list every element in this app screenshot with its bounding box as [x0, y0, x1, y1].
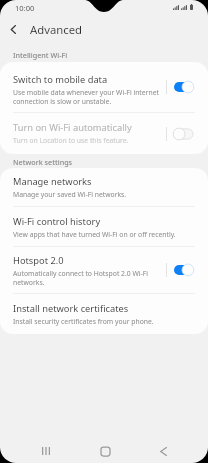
staticText: Intelligent Wi-Fi	[13, 50, 68, 60]
staticText: Turn on Location to use this feature.	[13, 136, 129, 145]
button[interactable]: Navigate up	[0, 18, 27, 40]
button[interactable]: Install network certificates	[0, 294, 208, 334]
button[interactable]: Hotspot 2.0	[0, 247, 208, 293]
staticText: Manage networks	[13, 175, 92, 188]
button[interactable]: Back	[148, 436, 178, 463]
staticText: Use mobile data whenever your Wi-Fi inte…	[13, 88, 161, 106]
staticText: View apps that have turned Wi-Fi on or o…	[13, 230, 176, 239]
staticText: Manage your saved Wi-Fi networks.	[13, 190, 127, 199]
staticText: Automatically connect to Hotspot 2.0 Wi-…	[13, 269, 161, 287]
button[interactable]: Switch on	[174, 263, 193, 277]
staticText: Turn on Wi-Fi automatically	[13, 121, 132, 134]
button[interactable]: Recent apps	[31, 436, 61, 463]
button[interactable]: Home	[90, 436, 120, 463]
button[interactable]: Switch on	[174, 80, 193, 94]
staticText: Install security certificates from your …	[13, 317, 154, 326]
staticText: Advanced	[30, 22, 82, 37]
staticText: Install network certificates	[13, 302, 129, 315]
staticText: Wi-Fi control history	[13, 215, 101, 228]
staticText: 10:00	[15, 3, 35, 13]
button[interactable]: Switch off	[174, 127, 193, 141]
staticText: Hotspot 2.0	[13, 254, 64, 267]
button[interactable]: Turn on Wi-Fi automatically	[0, 113, 208, 154]
staticText: Switch to mobile data	[13, 73, 108, 86]
staticText: Network settings	[13, 157, 73, 167]
button[interactable]: Switch to mobile data	[0, 62, 208, 112]
button[interactable]: Wi-Fi control history	[0, 207, 208, 246]
button[interactable]: Manage networks	[0, 168, 208, 206]
